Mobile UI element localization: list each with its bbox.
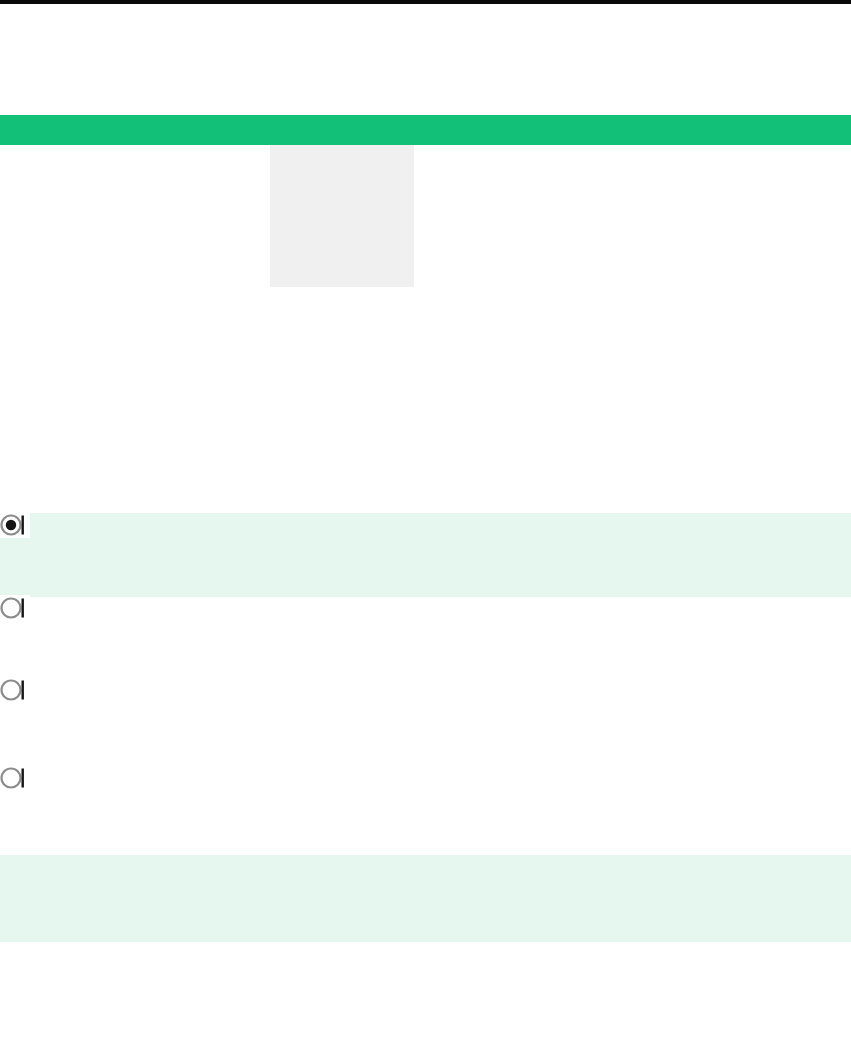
button[interactable]: Option 1, selected xyxy=(0,513,851,597)
button[interactable]: Option 4 xyxy=(0,765,851,855)
button[interactable]: Option 2 xyxy=(0,597,851,677)
button[interactable]: Option 3 xyxy=(0,677,851,765)
